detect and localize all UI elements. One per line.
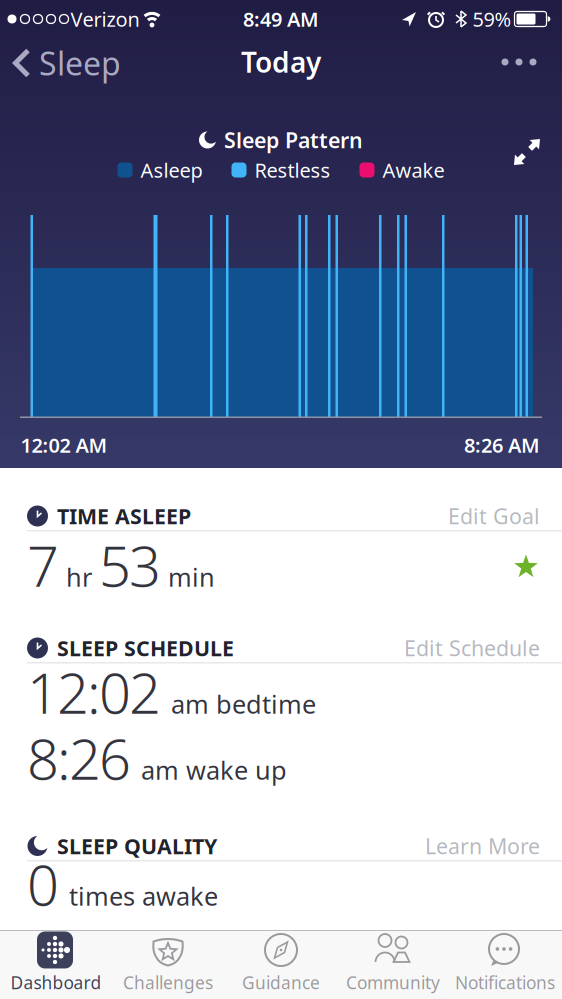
staticText: Sleep <box>39 42 121 84</box>
button[interactable]: More options <box>501 58 536 65</box>
staticText: Sleep Pattern <box>224 126 363 154</box>
staticText: am wake up <box>141 753 287 787</box>
staticText: times awake <box>69 879 218 913</box>
staticText: SLEEP SCHEDULE <box>57 634 234 662</box>
button[interactable]: Dashboard <box>10 932 101 994</box>
button[interactable]: Edit sleep schedule <box>404 634 540 662</box>
staticText: 59% <box>472 6 511 32</box>
staticText: Edit Goal <box>448 502 540 530</box>
staticText: 53 <box>99 528 161 602</box>
staticText: 12:02 <box>27 655 161 729</box>
button[interactable]: Learn more about sleep quality <box>425 832 540 860</box>
button[interactable]: Notifications <box>455 932 555 994</box>
staticText: 8:49 AM <box>243 6 319 32</box>
staticText: Notifications <box>455 971 555 994</box>
staticText: Awake <box>382 157 444 183</box>
staticText: hr <box>66 560 92 594</box>
staticText: SLEEP QUALITY <box>57 832 217 860</box>
staticText: am bedtime <box>171 687 316 721</box>
staticText: Today <box>241 43 321 81</box>
staticText: min <box>168 560 215 594</box>
staticText: Restless <box>254 157 330 183</box>
staticText: Learn More <box>425 832 540 860</box>
staticText: Challenges <box>123 971 213 994</box>
staticText: TIME ASLEEP <box>57 502 191 530</box>
staticText: 7 <box>27 528 59 602</box>
staticText: 12:02 AM <box>20 432 107 458</box>
button[interactable]: Back to Sleep <box>13 42 121 84</box>
staticText: Guidance <box>242 971 320 994</box>
staticText: Asleep <box>140 157 202 183</box>
staticText: Edit Schedule <box>404 634 540 662</box>
staticText: Verizon <box>70 6 139 32</box>
button[interactable]: Community <box>346 932 440 994</box>
staticText: 8:26 <box>27 721 131 795</box>
button[interactable]: Guidance <box>242 932 320 994</box>
button[interactable]: Challenges <box>123 932 213 994</box>
staticText: Community <box>346 971 440 994</box>
button[interactable]: Edit sleep goal <box>448 502 540 530</box>
staticText: 8:26 AM <box>464 432 540 458</box>
button[interactable]: Expand chart <box>514 139 540 165</box>
staticText: Dashboard <box>10 971 101 994</box>
staticText: 0 <box>27 847 59 921</box>
